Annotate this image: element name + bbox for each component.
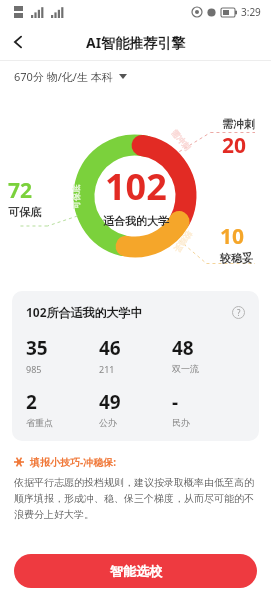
staticText: 3:29 — [241, 5, 261, 19]
staticText: 较稳妥 — [172, 229, 194, 255]
staticText: 较稳妥 — [220, 251, 253, 265]
staticText: 可保底 — [71, 185, 81, 209]
staticText: 211 — [99, 363, 115, 375]
button[interactable]: 670分 物/化/生 本科 — [14, 61, 271, 91]
staticText: 48 — [172, 335, 194, 361]
staticText: 46 — [99, 335, 121, 361]
staticText: 填报小技巧-冲稳保: — [30, 455, 117, 469]
staticText: 2 — [26, 389, 37, 415]
staticText: 20 — [222, 131, 247, 160]
staticText: 公办 — [99, 417, 117, 428]
staticText: 双一流 — [172, 363, 199, 374]
staticText: - — [172, 389, 179, 415]
staticText: 72 — [8, 176, 33, 205]
button[interactable]: Help — [232, 306, 245, 319]
staticText: 49 — [99, 389, 121, 415]
staticText: 智能选校 — [110, 563, 162, 579]
button[interactable]: 智能选校 — [14, 554, 257, 588]
staticText: 10 — [220, 222, 245, 251]
staticText: 依据平行志愿的投档规则，建议按录取概率由低至高的顺序填报，形成冲、稳、保三个梯度… — [14, 476, 257, 521]
button[interactable]: Back — [0, 24, 36, 60]
staticText: 需冲刺 — [222, 117, 255, 131]
staticText: 可保底 — [8, 205, 41, 219]
staticText: 民办 — [172, 417, 190, 428]
staticText: AI智能推荐引擎 — [86, 33, 186, 52]
staticText: 102 — [105, 162, 167, 211]
staticText: 102所合适我的大学中 — [26, 304, 143, 320]
staticText: 省重点 — [26, 417, 53, 428]
staticText: ? — [237, 307, 241, 318]
staticText: 985 — [26, 363, 42, 375]
staticText: 需冲刺 — [169, 128, 193, 152]
staticText: 适合我的大学 — [103, 214, 169, 228]
staticText: 670分 物/化/生 本科 — [14, 69, 113, 84]
staticText: 35 — [26, 335, 48, 361]
